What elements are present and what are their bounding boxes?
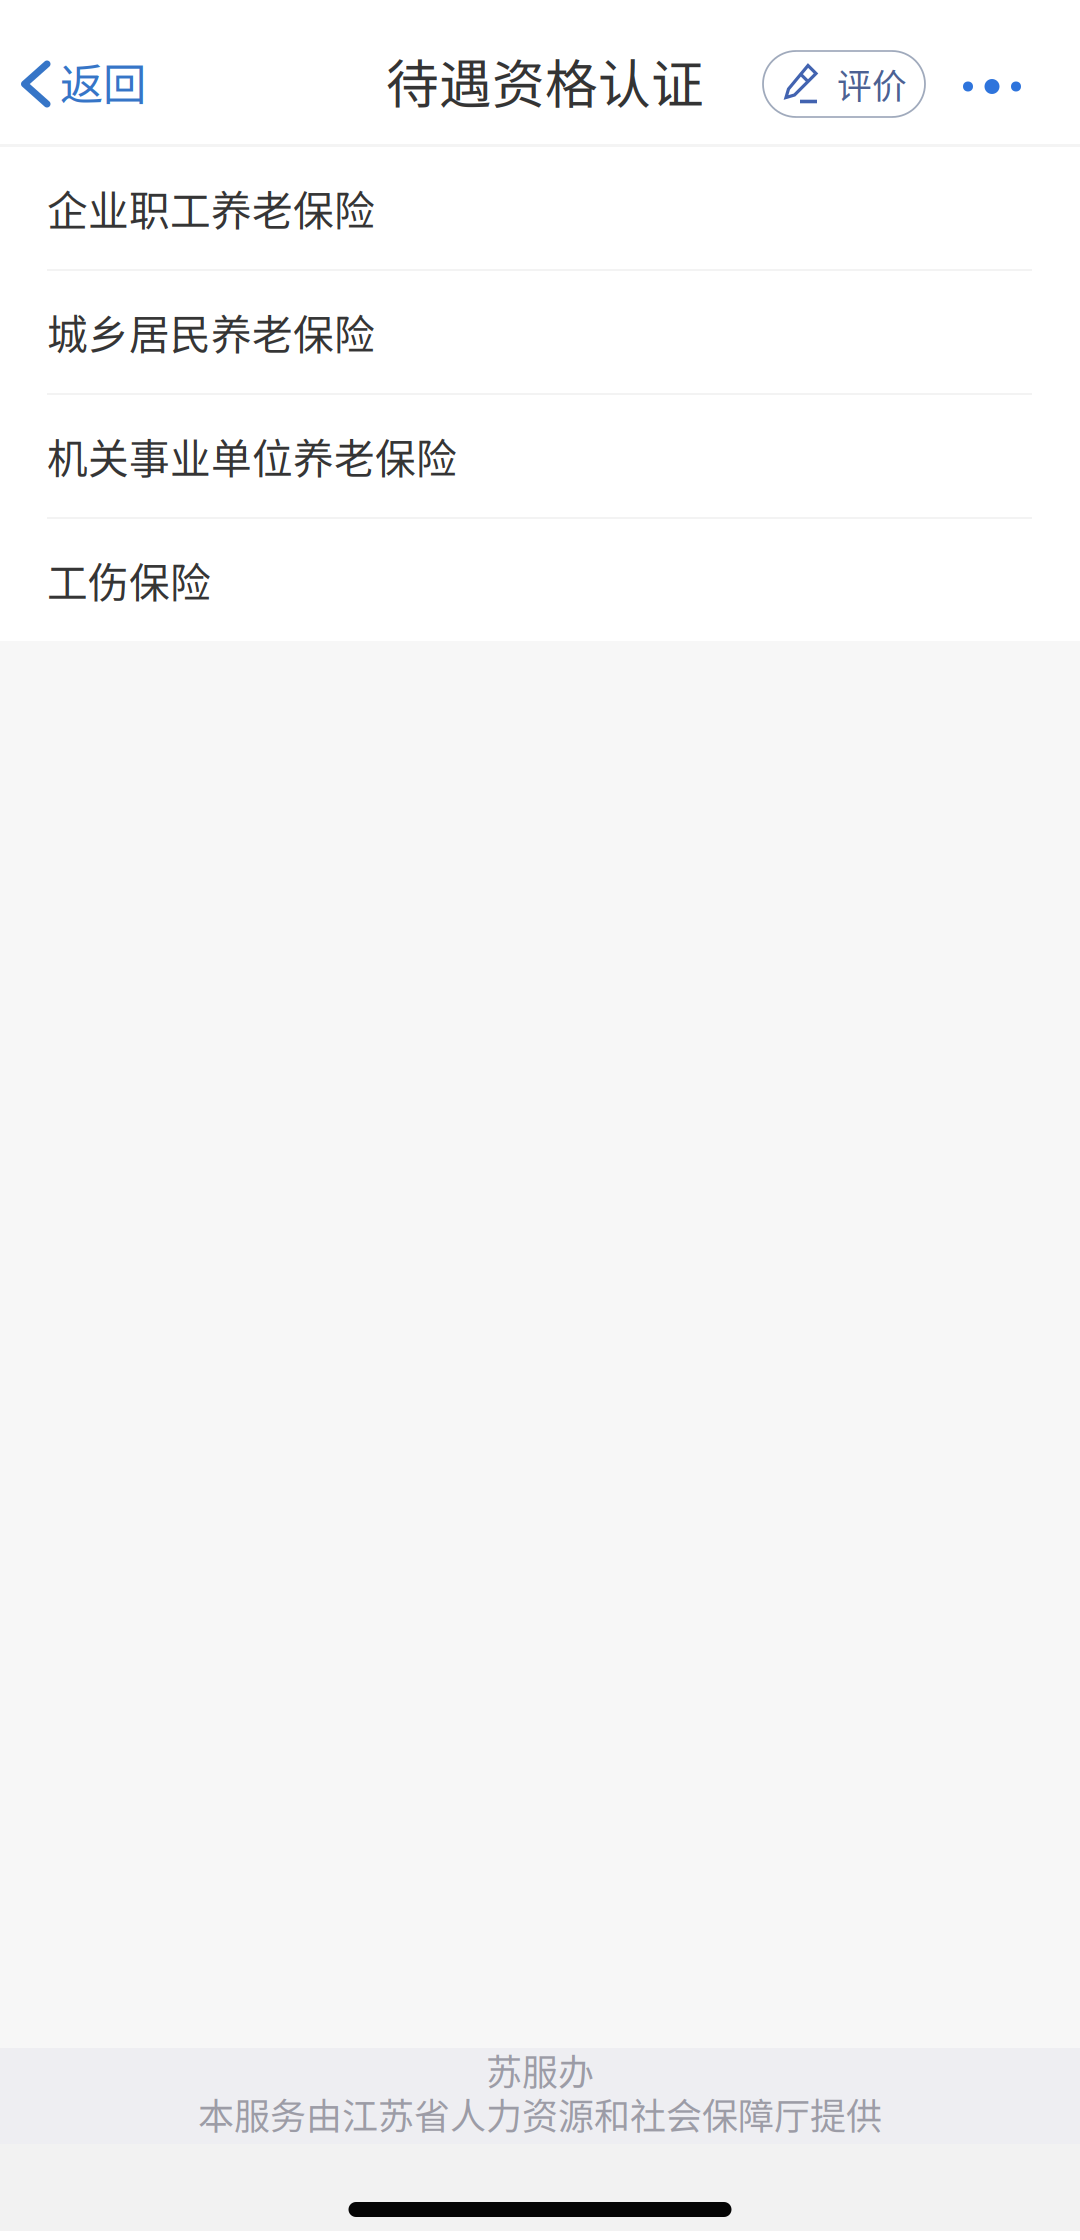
staticText: 机关事业单位养老保险: [47, 427, 457, 485]
staticText: 待遇资格认证: [386, 42, 704, 119]
staticText: 返回: [60, 50, 146, 113]
staticText: 工伤保险: [47, 551, 211, 609]
staticText: 苏服办: [486, 2044, 594, 2096]
button[interactable]: 城乡居民养老保险: [0, 271, 1080, 395]
button[interactable]: 评价: [763, 51, 925, 117]
button[interactable]: 机关事业单位养老保险: [0, 395, 1080, 519]
button[interactable]: 返回: [0, 24, 170, 143]
staticText: 城乡居民养老保险: [47, 303, 375, 361]
button[interactable]: More options: [948, 51, 1036, 117]
staticText: 评价: [837, 59, 907, 109]
staticText: 企业职工养老保险: [47, 179, 375, 237]
button[interactable]: 企业职工养老保险: [0, 147, 1080, 271]
button[interactable]: 工伤保险: [0, 519, 1080, 641]
staticText: 本服务由江苏省人力资源和社会保障厅提供: [198, 2088, 882, 2140]
